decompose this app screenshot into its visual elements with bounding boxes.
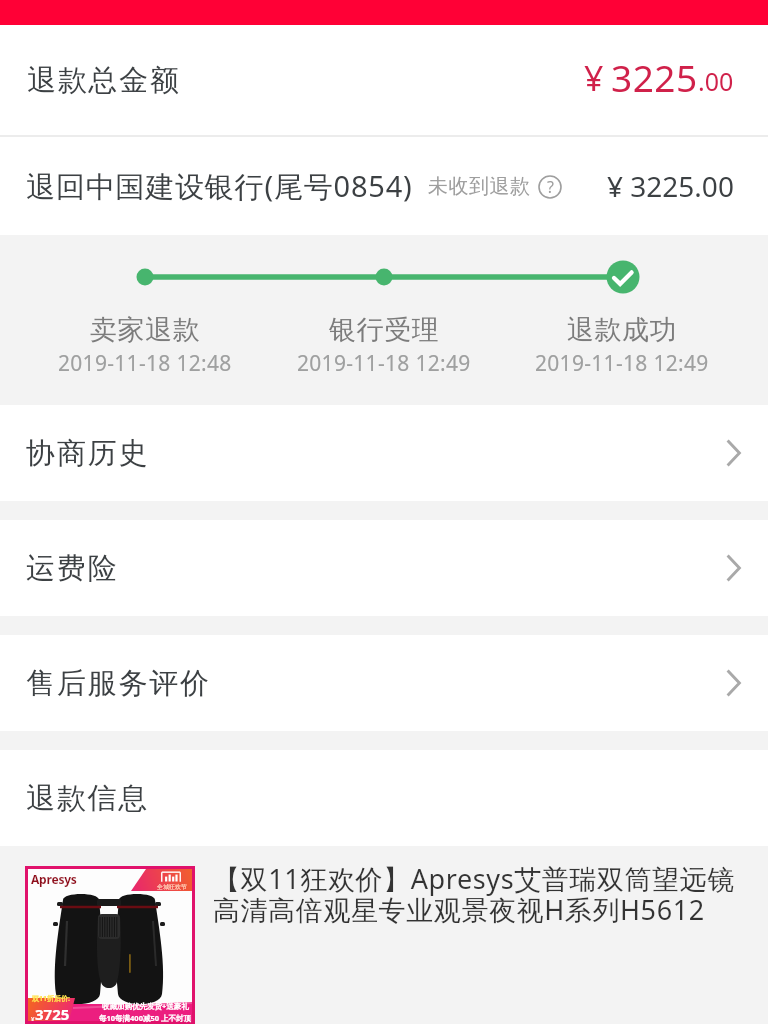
staticText: 退款信息 [26,780,150,817]
staticText: 协商历史 [26,435,150,472]
staticText: 运费险 [26,550,119,587]
staticText: 3225 [611,52,698,102]
staticText: 卖家退款 [90,313,201,347]
staticText: 银行受理 [329,313,440,347]
button[interactable]: 运费险 [0,520,768,616]
staticText: Apresys [31,871,77,887]
staticText: 每10每满400减50 上不封顶 [99,1013,191,1023]
staticText: 退款总金额 [26,62,180,99]
button[interactable]: 未收到退款 帮助说明 [428,174,562,199]
staticText: 全城狂欢节 [157,883,187,891]
staticText: .00 [698,64,734,98]
staticText: 退回中国建设银行(尾号0854) [26,166,413,206]
button[interactable]: 售后服务评价 [0,635,768,731]
staticText: 2019-11-18 12:49 [297,349,471,378]
staticText: 售后服务评价 [26,665,211,702]
staticText: 3725 [35,1004,70,1024]
staticText: 2019-11-18 12:48 [58,349,232,378]
staticText: 退款成功 [567,313,678,347]
staticText: 未收到退款 [428,174,531,199]
staticText: 【双11狂欢价】Apresys艾普瑞双筒望远镜高清高倍观星专业观景夜视H系列H5… [213,860,744,928]
staticText: ¥ 3225.00 [607,167,734,205]
staticText: 2019-11-18 12:49 [535,349,709,378]
staticText: ¥ [584,55,604,101]
staticText: 收藏加购优先发货+送豪礼 [102,1001,189,1011]
staticText: ¥ [31,1015,35,1023]
button[interactable]: Apresys [0,846,768,1024]
button[interactable]: 协商历史 [0,405,768,501]
staticText: ? [547,176,554,198]
staticText: 双11折后价: [32,994,70,1004]
